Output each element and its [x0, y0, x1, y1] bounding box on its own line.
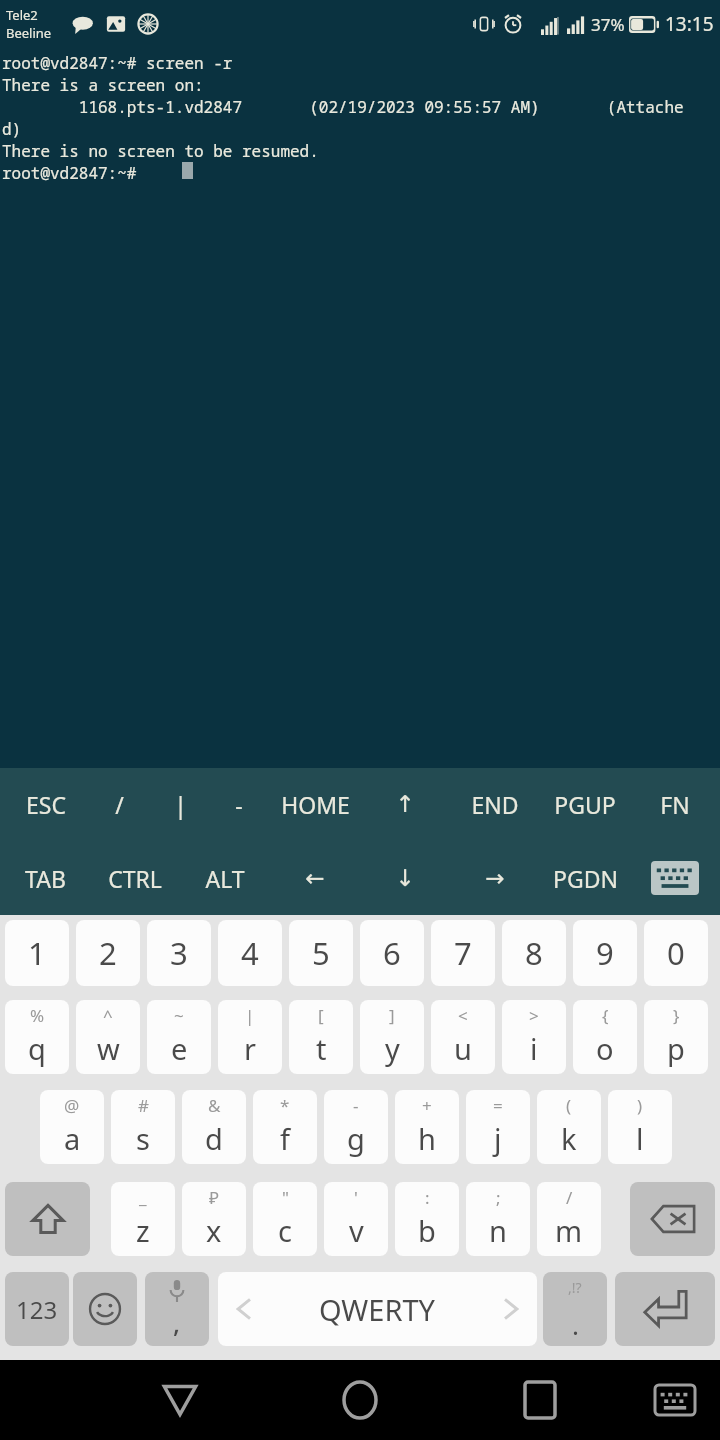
button[interactable]: /	[537, 1182, 601, 1256]
button[interactable]: :	[395, 1182, 459, 1256]
staticText: END	[471, 789, 519, 820]
button[interactable]: Emoji	[73, 1272, 137, 1346]
button[interactable]: ←	[273, 841, 357, 915]
staticText: ←	[305, 865, 325, 892]
button[interactable]: Backspace	[630, 1182, 715, 1256]
button[interactable]: >	[502, 1000, 566, 1074]
button[interactable]: ESC	[4, 768, 88, 841]
button[interactable]: 123	[5, 1272, 69, 1346]
button[interactable]: +	[395, 1090, 459, 1164]
button[interactable]: END	[453, 768, 537, 841]
button[interactable]: 0	[644, 920, 708, 986]
button[interactable]: 8	[502, 920, 566, 986]
staticText: s	[136, 1119, 150, 1158]
button[interactable]: Hide keyboard	[633, 841, 717, 915]
button[interactable]: -	[197, 768, 281, 841]
button[interactable]: Shift	[5, 1182, 90, 1256]
button[interactable]: Enter	[615, 1272, 715, 1346]
button[interactable]: PGUP	[543, 768, 627, 841]
staticText: a	[64, 1119, 81, 1158]
button[interactable]: 2	[76, 920, 140, 986]
staticText: 37%	[591, 13, 625, 36]
button[interactable]: 6	[360, 920, 424, 986]
button[interactable]: 5	[289, 920, 353, 986]
button[interactable]: |	[138, 768, 222, 841]
button[interactable]: PGDN	[543, 841, 627, 915]
staticText: 7	[454, 932, 472, 974]
button[interactable]: <	[431, 1000, 495, 1074]
button[interactable]: =	[466, 1090, 530, 1164]
button[interactable]: 9	[573, 920, 637, 986]
staticText: |	[174, 789, 187, 820]
staticText: -	[353, 1094, 359, 1117]
button[interactable]: *	[253, 1090, 317, 1164]
button[interactable]: FN	[633, 768, 717, 841]
button[interactable]: {	[573, 1000, 637, 1074]
button[interactable]: 7	[431, 920, 495, 986]
button[interactable]: @	[40, 1090, 104, 1164]
staticText: o	[596, 1029, 614, 1068]
button[interactable]: 1	[5, 920, 69, 986]
staticText: ESC	[26, 789, 66, 820]
staticText: 5	[312, 932, 330, 974]
button[interactable]: ;	[466, 1182, 530, 1256]
button[interactable]: Recents	[500, 1360, 580, 1440]
staticText: PGDN	[553, 863, 618, 894]
staticText: "	[282, 1186, 289, 1209]
button[interactable]: [	[289, 1000, 353, 1074]
staticText: _	[139, 1186, 147, 1209]
staticText: 9	[596, 932, 614, 974]
button[interactable]: ,!?	[543, 1272, 607, 1346]
button[interactable]: TAB	[3, 841, 87, 915]
button[interactable]: /	[77, 768, 161, 841]
staticText: y	[385, 1029, 400, 1068]
staticText: root@vd2847:~#	[2, 162, 147, 184]
staticText: CTRL	[108, 863, 162, 894]
button[interactable]: #	[111, 1090, 175, 1164]
button[interactable]: QWERTY	[218, 1272, 537, 1346]
button[interactable]: |	[218, 1000, 282, 1074]
staticText: QWERTY	[319, 1290, 436, 1329]
staticText: 1168.pts-1.vd2847 (02/19/2023 09:55:57 A…	[2, 96, 684, 118]
button[interactable]: HOME	[273, 768, 357, 841]
staticText: [	[318, 1004, 324, 1027]
button[interactable]: ]	[360, 1000, 424, 1074]
button[interactable]: ^	[76, 1000, 140, 1074]
button[interactable]: Home	[320, 1360, 400, 1440]
button[interactable]: ₽	[182, 1182, 246, 1256]
button[interactable]: CTRL	[93, 841, 177, 915]
button[interactable]: 3	[147, 920, 211, 986]
button[interactable]: Back	[140, 1360, 220, 1440]
staticText: )	[637, 1094, 643, 1117]
button[interactable]: Voice input	[145, 1272, 209, 1346]
button[interactable]: )	[608, 1090, 672, 1164]
staticText: HOME	[281, 789, 350, 820]
staticText: p	[667, 1029, 685, 1068]
button[interactable]: ~	[147, 1000, 211, 1074]
staticText: t	[316, 1029, 327, 1068]
staticText: TAB	[25, 863, 66, 894]
staticText: 13:15	[665, 11, 714, 37]
staticText: ↑	[395, 791, 415, 818]
staticText: w	[97, 1029, 120, 1068]
staticText: 123	[16, 1293, 58, 1326]
button[interactable]: ↑	[363, 768, 447, 841]
button[interactable]: (	[537, 1090, 601, 1164]
button[interactable]: Switch keyboard	[640, 1360, 710, 1440]
button[interactable]: "	[253, 1182, 317, 1256]
button[interactable]: ↓	[363, 841, 447, 915]
button[interactable]: →	[453, 841, 537, 915]
button[interactable]: _	[111, 1182, 175, 1256]
staticText: }	[673, 1004, 680, 1027]
staticText: ]	[389, 1004, 395, 1027]
button[interactable]: %	[5, 1000, 69, 1074]
button[interactable]: ALT	[183, 841, 267, 915]
staticText: |	[245, 1004, 255, 1027]
staticText: d	[205, 1119, 223, 1158]
button[interactable]: '	[324, 1182, 388, 1256]
button[interactable]: &	[182, 1090, 246, 1164]
button[interactable]: -	[324, 1090, 388, 1164]
button[interactable]: }	[644, 1000, 708, 1074]
staticText: l	[636, 1119, 644, 1158]
button[interactable]: 4	[218, 920, 282, 986]
